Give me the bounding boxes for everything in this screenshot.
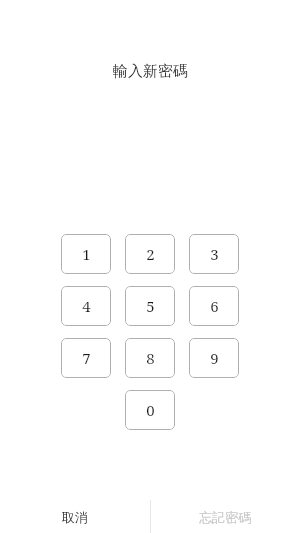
button[interactable]: 忘記密碼 (150, 500, 300, 533)
staticText: 取消 (62, 509, 88, 525)
button[interactable]: 6 (189, 286, 239, 326)
button[interactable]: 7 (61, 338, 111, 378)
staticText: 7 (82, 348, 91, 368)
button[interactable]: 9 (189, 338, 239, 378)
staticText: 8 (146, 348, 155, 368)
staticText: 1 (82, 244, 91, 264)
staticText: 3 (210, 244, 219, 264)
button[interactable]: 2 (125, 234, 175, 274)
button[interactable]: 3 (189, 234, 239, 274)
button[interactable]: 取消 (0, 500, 150, 533)
staticText: 9 (210, 348, 219, 368)
staticText: 0 (146, 400, 155, 420)
staticText: 忘記密碼 (199, 509, 251, 525)
staticText: 輸入新密碼 (113, 62, 188, 81)
button[interactable]: 4 (61, 286, 111, 326)
button[interactable]: 0 (125, 390, 175, 430)
button[interactable]: 8 (125, 338, 175, 378)
staticText: 2 (146, 244, 155, 264)
staticText: 4 (82, 296, 91, 316)
staticText: 5 (146, 296, 155, 316)
button[interactable]: 5 (125, 286, 175, 326)
button[interactable]: 1 (61, 234, 111, 274)
staticText: 6 (210, 296, 219, 316)
